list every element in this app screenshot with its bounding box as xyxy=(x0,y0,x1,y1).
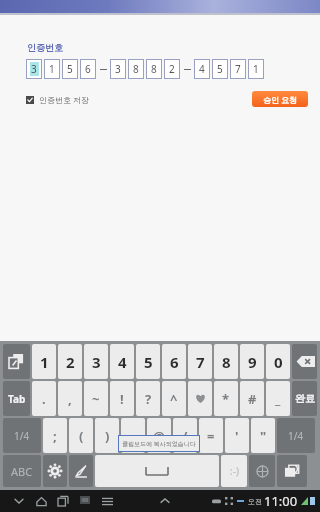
button[interactable]: 0 xyxy=(266,344,290,379)
staticText: 8 xyxy=(151,62,157,76)
staticText: 9 xyxy=(248,352,257,372)
button[interactable]: ! xyxy=(110,381,134,416)
staticText: ) xyxy=(105,427,110,445)
button[interactable]: 5 xyxy=(62,59,78,79)
button[interactable]: ^ xyxy=(162,381,186,416)
staticText: ? xyxy=(145,390,152,408)
staticText: 8 xyxy=(222,352,231,372)
button[interactable]: 7 xyxy=(188,344,212,379)
staticText: ~ xyxy=(92,390,100,408)
button[interactable]: - xyxy=(121,418,145,453)
button[interactable]: 1 xyxy=(248,59,264,79)
button[interactable]: 3 xyxy=(84,344,108,379)
other: Space xyxy=(146,467,168,475)
staticText: _ xyxy=(275,390,281,408)
button[interactable]: 7 xyxy=(230,59,246,79)
staticText: * xyxy=(222,390,230,408)
button[interactable]: 6 xyxy=(162,344,186,379)
button[interactable]: Recents xyxy=(52,490,74,512)
staticText: # xyxy=(248,390,257,408)
button[interactable]: # xyxy=(240,381,264,416)
button[interactable]: 9 xyxy=(240,344,264,379)
button[interactable]: Key xyxy=(277,455,307,487)
button[interactable]: ~ xyxy=(84,381,108,416)
staticText: ' xyxy=(235,427,239,445)
button[interactable]: . xyxy=(32,381,56,416)
staticText: 인증번호 xyxy=(27,42,63,53)
button[interactable]: , xyxy=(58,381,82,416)
button[interactable]: Tab xyxy=(3,381,30,416)
button[interactable]: Key xyxy=(292,344,317,379)
button[interactable]: 8 xyxy=(128,59,144,79)
button[interactable]: 5 xyxy=(136,344,160,379)
staticText: 3 xyxy=(115,62,121,76)
button[interactable]: 3 xyxy=(26,59,42,79)
staticText: - xyxy=(131,427,136,445)
button[interactable]: 1 xyxy=(44,59,60,79)
button[interactable]: 1/4 xyxy=(277,418,315,453)
staticText: 완료 xyxy=(295,392,315,405)
staticText: ^ xyxy=(170,390,178,408)
button[interactable]: 4 xyxy=(110,344,134,379)
staticText: 7 xyxy=(196,352,205,372)
button[interactable]: Home xyxy=(30,490,52,512)
button[interactable]: Key xyxy=(95,455,219,487)
button[interactable]: ; xyxy=(43,418,67,453)
button[interactable]: Screenshot xyxy=(74,490,96,512)
staticText: 4 xyxy=(199,62,205,76)
staticText: . xyxy=(42,390,46,408)
button[interactable]: ? xyxy=(136,381,160,416)
staticText: ( xyxy=(79,427,84,445)
button[interactable]: Key xyxy=(43,455,67,487)
button[interactable]: 1/4 xyxy=(3,418,41,453)
button[interactable]: 2 xyxy=(58,344,82,379)
button[interactable]: @ xyxy=(147,418,171,453)
button[interactable]: 1 xyxy=(32,344,56,379)
staticText: Tab xyxy=(8,392,26,406)
staticText: " xyxy=(260,427,267,445)
button[interactable]: 2 xyxy=(164,59,180,79)
button[interactable]: 인증번호 저장 xyxy=(26,94,90,105)
staticText: 오전 xyxy=(248,497,262,506)
button[interactable]: 4 xyxy=(194,59,210,79)
button[interactable]: Back xyxy=(8,490,30,512)
button[interactable]: ' xyxy=(225,418,249,453)
other: Language xyxy=(256,465,269,478)
button[interactable]: 8 xyxy=(214,344,238,379)
staticText: 1 xyxy=(40,352,49,372)
staticText: 2 xyxy=(169,62,175,76)
button[interactable]: / xyxy=(173,418,197,453)
button[interactable]: = xyxy=(199,418,223,453)
button[interactable]: :-) xyxy=(221,455,247,487)
button[interactable]: Key xyxy=(3,344,30,379)
staticText: ABC xyxy=(11,464,33,479)
button[interactable]: 3 xyxy=(110,59,126,79)
button[interactable]: Key xyxy=(188,381,212,416)
staticText: , xyxy=(68,390,72,408)
staticText: 2 xyxy=(66,352,75,372)
button[interactable]: Menu xyxy=(96,490,118,512)
button[interactable]: 승인 요청 xyxy=(252,91,308,107)
button[interactable]: ABC xyxy=(3,455,41,487)
staticText: 승인 요청 xyxy=(263,94,298,105)
button[interactable]: " xyxy=(251,418,275,453)
button[interactable]: ) xyxy=(95,418,119,453)
button[interactable]: 6 xyxy=(80,59,96,79)
staticText: 인증번호 저장 xyxy=(39,94,90,105)
button[interactable]: Expand xyxy=(154,490,176,512)
button[interactable]: 8 xyxy=(146,59,162,79)
staticText: 1 xyxy=(253,62,259,76)
other: Attach xyxy=(284,463,300,479)
button[interactable]: ( xyxy=(69,418,93,453)
other: Handwriting xyxy=(74,464,88,478)
button[interactable]: _ xyxy=(266,381,290,416)
staticText: 5 xyxy=(67,62,73,76)
button[interactable]: 5 xyxy=(212,59,228,79)
button[interactable]: 완료 xyxy=(292,381,317,416)
staticText: :-) xyxy=(230,464,239,478)
staticText: 8 xyxy=(133,62,139,76)
button[interactable]: * xyxy=(214,381,238,416)
button[interactable]: Key xyxy=(69,455,93,487)
staticText: 11:00 xyxy=(264,492,298,510)
button[interactable]: Key xyxy=(249,455,275,487)
